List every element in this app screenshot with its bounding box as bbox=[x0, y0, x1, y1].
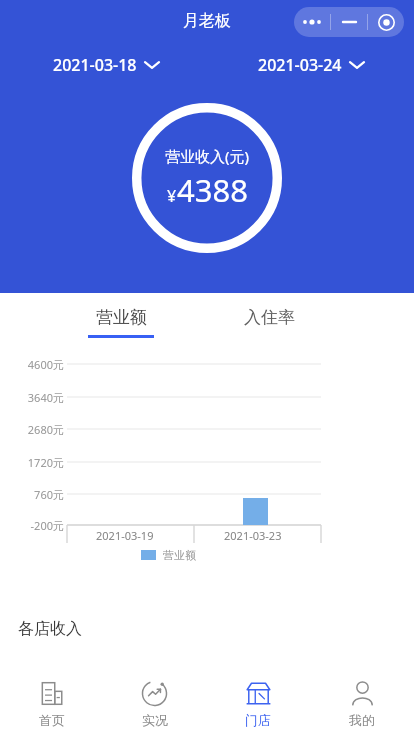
staticText: 我的 bbox=[349, 712, 375, 728]
button[interactable]: 我的 bbox=[310, 666, 414, 736]
button[interactable]: Mini program menu bbox=[294, 7, 404, 37]
staticText: 760元 bbox=[20, 487, 64, 502]
button[interactable]: 首页 bbox=[0, 666, 103, 736]
staticText: 月老板 bbox=[183, 11, 231, 31]
button[interactable]: 实况 bbox=[103, 666, 206, 736]
button[interactable]: 2021-03-24 bbox=[258, 50, 364, 80]
button[interactable]: 门店 bbox=[206, 666, 310, 736]
staticText: 门店 bbox=[245, 712, 271, 728]
staticText: 2021-03-19 bbox=[96, 528, 154, 543]
button[interactable]: 营业额 bbox=[82, 307, 160, 338]
staticText: 各店收入 bbox=[18, 619, 82, 639]
staticText: 2021-03-24 bbox=[258, 54, 342, 76]
staticText: 营业额 bbox=[163, 548, 196, 562]
staticText: -200元 bbox=[20, 518, 64, 533]
staticText: 4600元 bbox=[20, 357, 64, 372]
button[interactable]: 2021-03-18 bbox=[53, 50, 159, 80]
staticText: 营业额 bbox=[96, 307, 147, 328]
staticText: 实况 bbox=[142, 712, 168, 728]
staticText: 2680元 bbox=[20, 422, 64, 437]
button[interactable]: 入住率 bbox=[238, 307, 301, 338]
staticText: 2021-03-18 bbox=[53, 54, 137, 76]
staticText: 3640元 bbox=[20, 390, 64, 405]
staticText: 入住率 bbox=[244, 307, 295, 328]
staticText: 首页 bbox=[39, 712, 65, 728]
staticText: 2021-03-23 bbox=[224, 528, 282, 543]
staticText: 1720元 bbox=[20, 455, 64, 470]
staticText: 营业收入(元) bbox=[165, 146, 250, 166]
staticText: ¥ bbox=[167, 185, 177, 207]
staticText: 4388 bbox=[177, 169, 248, 211]
